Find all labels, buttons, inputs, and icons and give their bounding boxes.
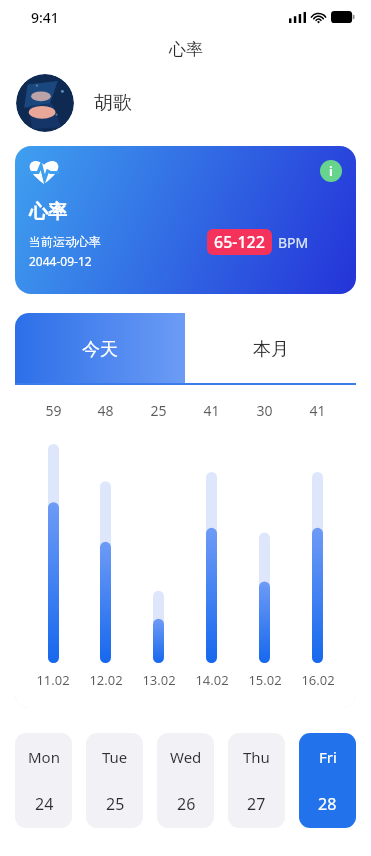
staticText: 12.02 (89, 671, 123, 689)
staticText: Wed (170, 747, 202, 767)
staticText: 胡歌 (94, 91, 132, 115)
button[interactable]: Information (15, 146, 356, 294)
staticText: Tue (102, 747, 128, 767)
staticText: 25 (150, 401, 167, 420)
staticText: 心率 (29, 200, 67, 224)
staticText: 2044-09-12 (29, 253, 92, 269)
staticText: Mon (28, 747, 60, 767)
staticText: 本月 (253, 338, 289, 361)
staticText: 59 (45, 401, 62, 420)
button[interactable]: Tue (86, 733, 143, 828)
button[interactable]: Mon (15, 733, 72, 828)
staticText: 13.02 (142, 671, 176, 689)
staticText: 14.02 (195, 671, 229, 689)
button[interactable]: Fri (299, 733, 356, 828)
staticText: Thu (243, 747, 270, 767)
staticText: 心率 (169, 39, 203, 60)
staticText: BPM (278, 233, 309, 252)
button[interactable]: Information (320, 160, 342, 182)
button[interactable]: Thu (228, 733, 285, 828)
staticText: 16.02 (301, 671, 335, 689)
staticText: 27 (247, 793, 266, 815)
staticText: 26 (177, 793, 196, 815)
staticText: 25 (106, 793, 125, 815)
button[interactable]: Wed (157, 733, 214, 828)
staticText: 9:41 (31, 8, 59, 27)
staticText: 41 (309, 401, 326, 420)
staticText: 48 (97, 401, 114, 420)
staticText: 15.02 (248, 671, 282, 689)
staticText: 当前运动心率 (29, 234, 101, 249)
staticText: Fri (319, 747, 337, 767)
staticText: 今天 (82, 338, 118, 361)
button[interactable]: 本月 (185, 313, 356, 385)
staticText: 24 (35, 793, 54, 815)
button[interactable] (16, 74, 74, 132)
staticText: 28 (318, 793, 337, 815)
staticText: 65-122 (214, 231, 265, 253)
staticText: 11.02 (36, 671, 70, 689)
button[interactable]: 今天 (15, 313, 185, 385)
staticText: 30 (256, 401, 273, 420)
staticText: i (329, 162, 333, 180)
staticText: 41 (203, 401, 220, 420)
